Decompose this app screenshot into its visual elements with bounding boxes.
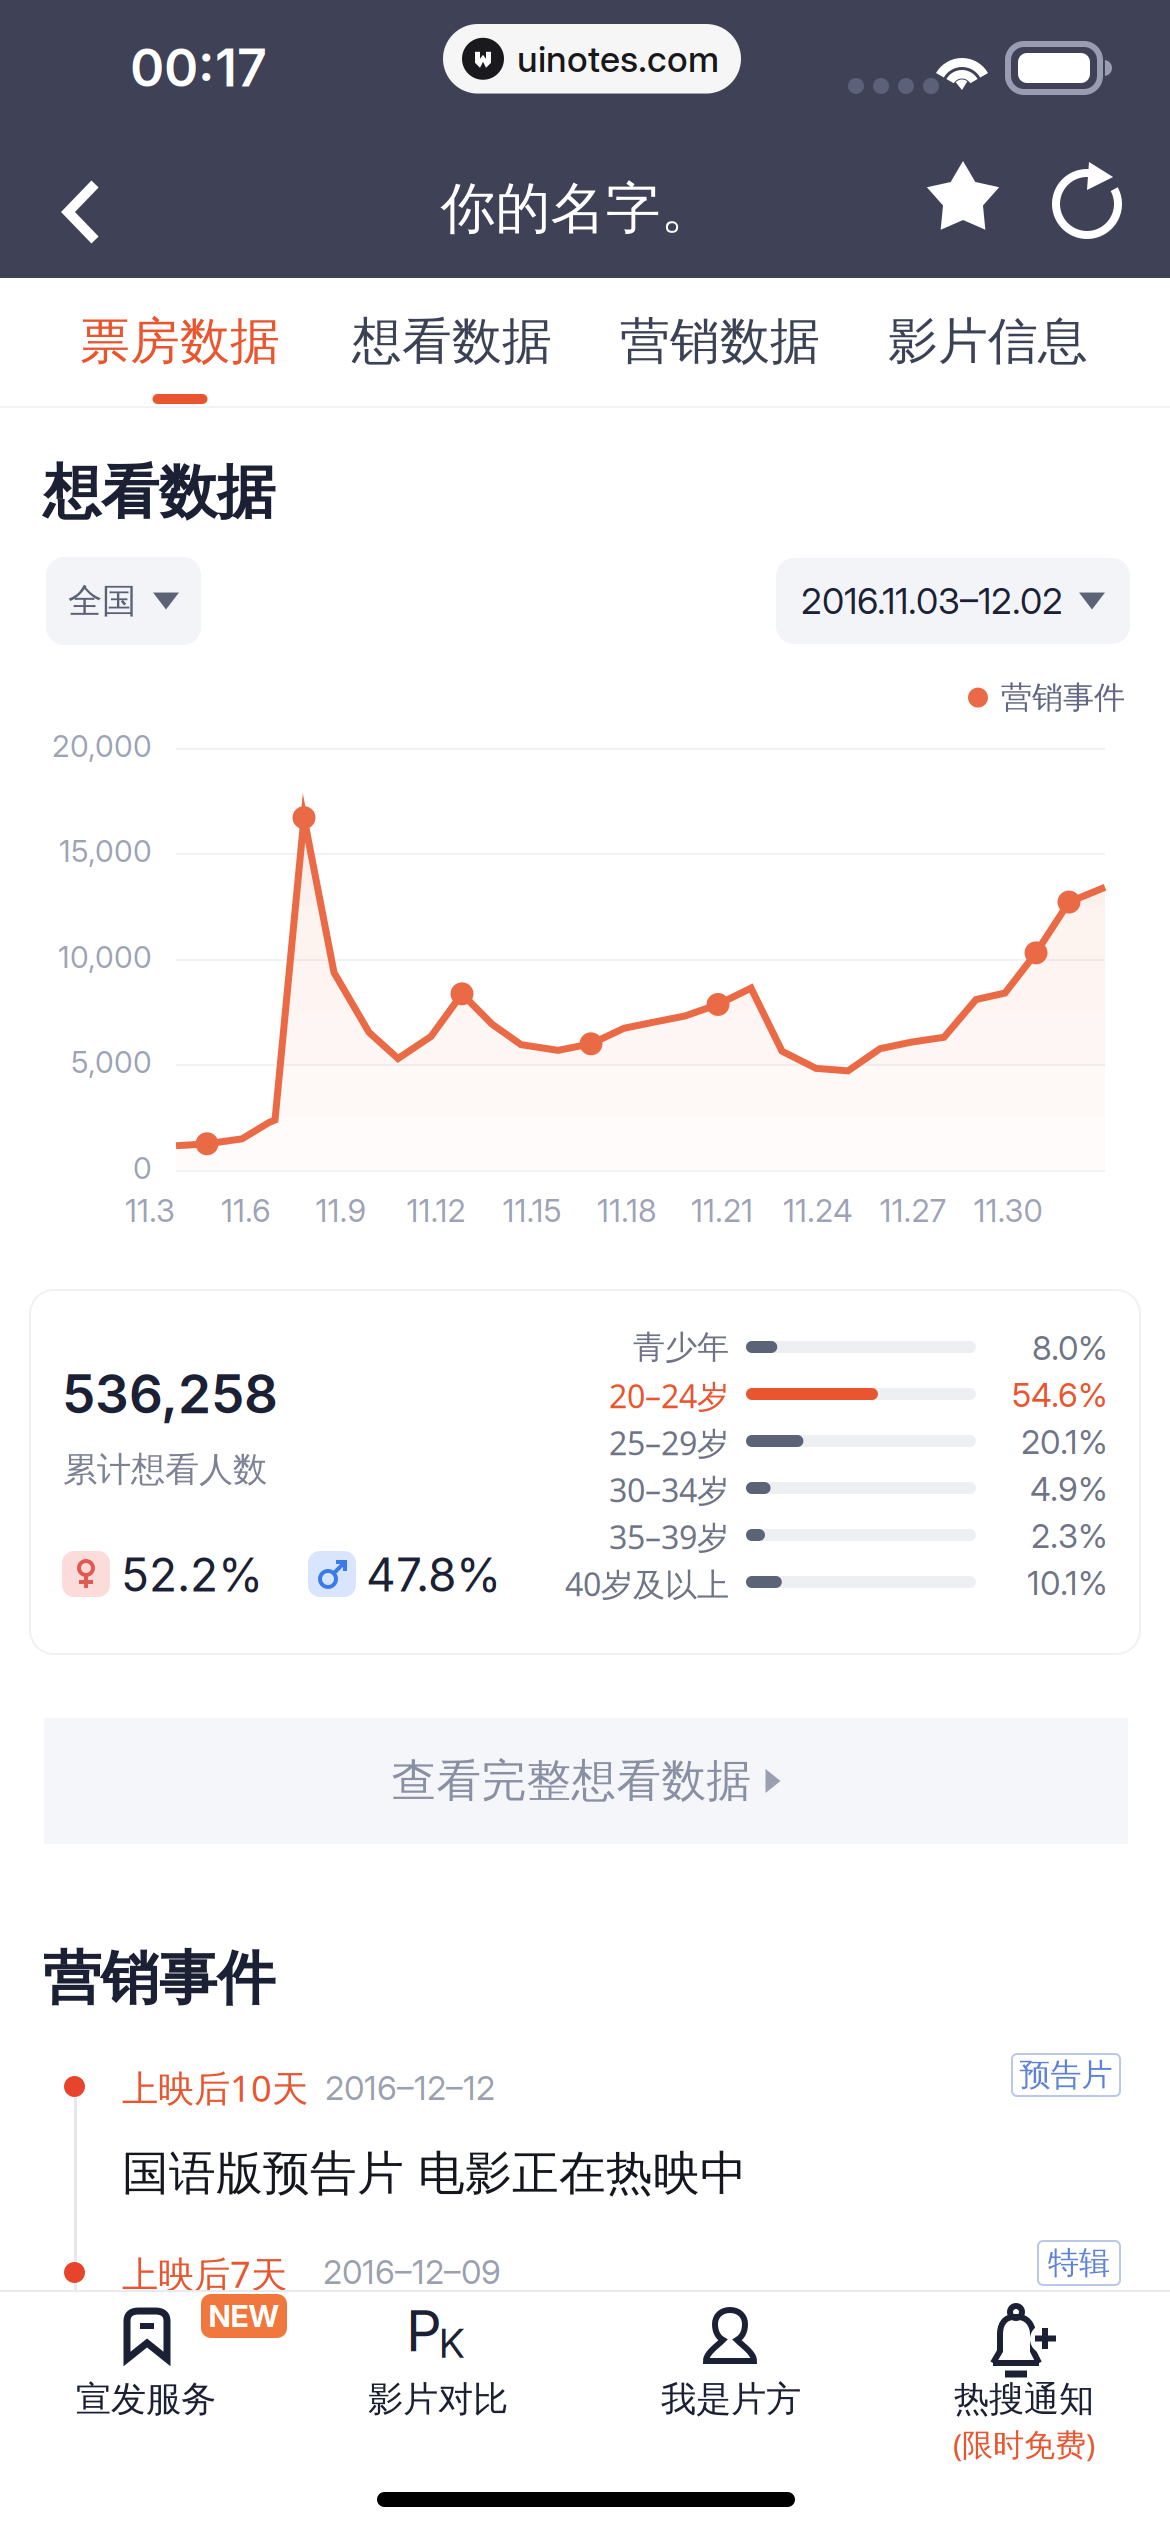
staticText: 0 xyxy=(133,1150,152,1186)
staticText: 10.1% xyxy=(1027,1563,1108,1603)
staticText: 11.12 xyxy=(406,1192,465,1229)
staticText: 11.27 xyxy=(879,1192,946,1229)
staticText: 你的名字。 xyxy=(440,174,715,243)
staticText: 47.8% xyxy=(366,1547,501,1603)
staticText: 2.3% xyxy=(1031,1516,1108,1556)
staticText: 查看完整想看数据 xyxy=(391,1753,751,1809)
staticText: 15,000 xyxy=(59,833,152,869)
staticText: 5,000 xyxy=(71,1044,152,1080)
staticText: 宣发服务 xyxy=(76,2377,216,2421)
staticText: 11.9 xyxy=(315,1192,366,1229)
staticText: 35–39岁 xyxy=(609,1515,729,1559)
staticText: 影片信息 xyxy=(888,310,1088,373)
staticText: 20.1% xyxy=(1021,1422,1108,1462)
staticText: 00:17 xyxy=(130,36,267,99)
staticText: P xyxy=(406,2297,442,2365)
button[interactable]: Back xyxy=(28,148,138,258)
staticText: 票房数据 xyxy=(80,310,280,373)
staticText: 25–29岁 xyxy=(609,1421,729,1465)
staticText: 上映后7天 xyxy=(122,2249,287,2298)
staticText: 营销事件 xyxy=(1001,678,1125,717)
staticText: 累计想看人数 xyxy=(63,1448,267,1491)
staticText: 热搜通知 xyxy=(954,2377,1094,2421)
staticText: 影片对比 xyxy=(368,2377,508,2421)
staticText: 想看数据 xyxy=(352,310,552,373)
staticText: 全国 xyxy=(68,579,136,622)
staticText: 11.21 xyxy=(691,1192,753,1229)
staticText: NEW xyxy=(208,2298,279,2334)
staticText: 11.24 xyxy=(783,1192,853,1229)
staticText: 54.6% xyxy=(1012,1375,1108,1415)
button[interactable]: 影片信息 xyxy=(864,278,1112,406)
staticText: 2016.11.03–12.02 xyxy=(801,579,1063,623)
staticText: 想看数据 xyxy=(43,456,275,529)
staticText: 20–24岁 xyxy=(609,1374,729,1418)
staticText: 8.0% xyxy=(1032,1328,1108,1368)
staticText: 营销事件 xyxy=(43,1942,275,2015)
button[interactable]: 2016.11.03–12.02 xyxy=(776,558,1130,644)
button[interactable]: 全国 xyxy=(46,557,201,645)
staticText: 11.6 xyxy=(221,1192,271,1229)
staticText: 国语版预告片 电影正在热映中 xyxy=(122,2144,747,2203)
button[interactable]: 热搜通知 xyxy=(878,2300,1170,2490)
staticText: 52.2% xyxy=(121,1547,263,1603)
staticText: 营销数据 xyxy=(620,310,820,373)
staticText: 特辑 xyxy=(1048,2243,1110,2283)
staticText: 11.3 xyxy=(125,1192,175,1229)
button[interactable]: 营销数据 xyxy=(596,278,844,406)
button[interactable]: 票房数据 xyxy=(56,278,304,406)
staticText: 11.30 xyxy=(973,1192,1042,1229)
staticText: 青少年 xyxy=(633,1327,729,1367)
staticText: 2016–12–12 xyxy=(325,2068,495,2108)
staticText: 11.15 xyxy=(502,1192,561,1229)
staticText: 10,000 xyxy=(58,939,152,975)
button[interactable]: 我是片方 xyxy=(585,2300,877,2490)
staticText: 536,258 xyxy=(62,1362,278,1426)
staticText: 我是片方 xyxy=(661,2377,801,2421)
button[interactable]: 宣发服务 xyxy=(0,2300,292,2490)
staticText: 2016–12–09 xyxy=(323,2252,501,2292)
button[interactable]: 查看完整想看数据 xyxy=(44,1718,1128,1844)
staticText: 4.9% xyxy=(1030,1469,1108,1509)
staticText: 20,000 xyxy=(52,728,152,764)
button[interactable]: Favorite xyxy=(900,155,1004,259)
staticText: 40岁及以上 xyxy=(565,1562,729,1606)
button[interactable]: Share xyxy=(1028,155,1132,259)
staticText: (限时免费) xyxy=(953,2423,1095,2465)
staticText: uinotes.com xyxy=(517,37,719,81)
staticText: 30–34岁 xyxy=(609,1468,729,1512)
staticText: K xyxy=(439,2319,465,2367)
button[interactable]: 想看数据 xyxy=(328,278,576,406)
button[interactable]: P xyxy=(292,2300,584,2490)
staticText: 上映后10天 xyxy=(122,2063,308,2112)
staticText: 11.18 xyxy=(597,1192,657,1229)
staticText: 预告片 xyxy=(1019,2055,1112,2095)
